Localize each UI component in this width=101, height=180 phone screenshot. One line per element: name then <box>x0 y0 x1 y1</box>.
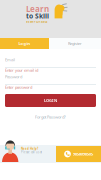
staticText: Enter your email id <box>5 67 38 73</box>
button[interactable]: Forgot Password? <box>5 113 96 121</box>
button[interactable]: LOGIN <box>5 94 96 107</box>
staticText: Password <box>5 74 22 79</box>
staticText: 9858098505 <box>73 151 93 157</box>
button[interactable]: Register <box>49 38 101 49</box>
staticText: Email <box>5 57 15 62</box>
staticText: Register <box>68 41 82 46</box>
staticText: Need Help? <box>21 147 38 150</box>
staticText: LOGIN <box>44 98 57 103</box>
button[interactable]: Login <box>0 38 49 49</box>
staticText: Please call us at <box>21 150 42 154</box>
staticText: Enter password <box>5 84 32 90</box>
staticText: Learn <box>26 3 49 14</box>
staticText: Login <box>18 41 30 46</box>
staticText: BE EMPLOYABLE <box>26 20 47 23</box>
staticText: Forgot Password? <box>35 114 66 120</box>
staticText: to Skill <box>26 11 49 20</box>
button[interactable]: 9858098505 <box>56 146 101 162</box>
